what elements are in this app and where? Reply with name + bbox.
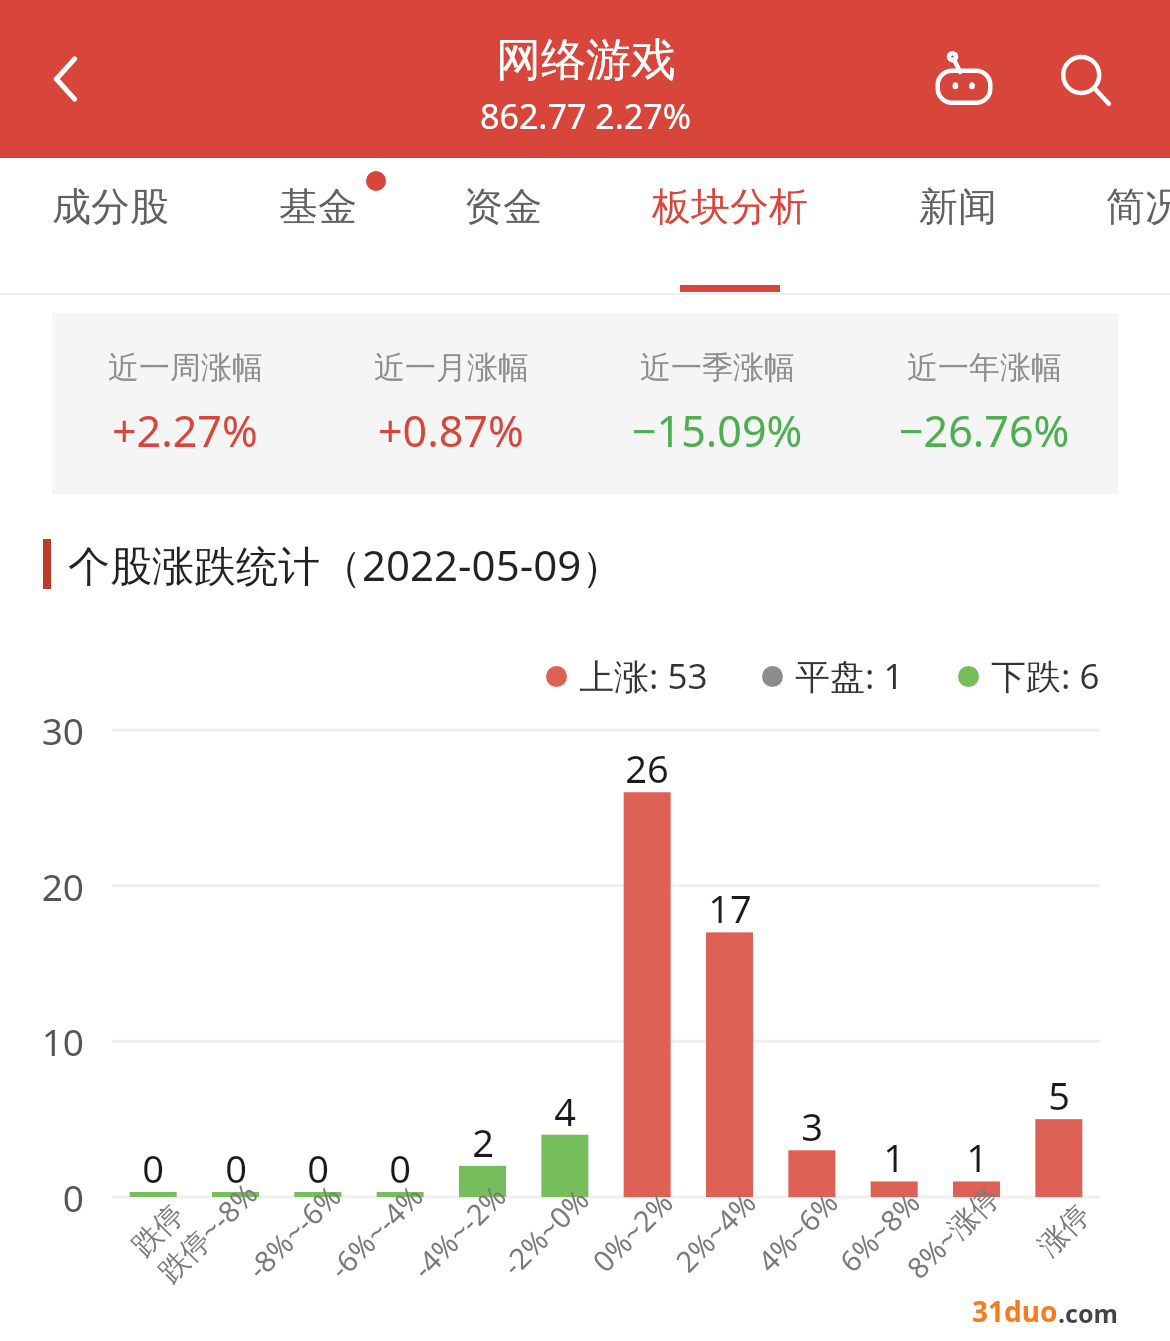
staticText: 近一季涨幅 (640, 348, 795, 387)
button[interactable]: Search (1040, 35, 1132, 127)
staticText: -6%~-4% (320, 1176, 431, 1287)
staticText: 2 (433, 1116, 533, 1168)
staticText: 下跌: 6 (991, 652, 1100, 700)
staticText: -4%~-2% (403, 1176, 514, 1287)
staticText: 0 (268, 1142, 368, 1194)
staticText: 成分股 (52, 182, 169, 231)
staticText: 近一周涨幅 (108, 348, 263, 387)
button[interactable]: Assistant robot (918, 35, 1010, 127)
button[interactable]: 近一周涨幅 (52, 313, 1118, 494)
staticText: 3 (762, 1100, 862, 1152)
button[interactable]: 成分股 (15, 158, 205, 295)
button[interactable]: 基金 (238, 158, 398, 295)
staticText: 基金 (279, 182, 357, 231)
staticText: 4%~6% (749, 1183, 845, 1280)
staticText: 资金 (464, 182, 542, 231)
staticText: 10 (12, 1016, 84, 1066)
button[interactable]: 平盘: 1 (762, 652, 904, 700)
staticText: 5 (1009, 1069, 1109, 1121)
staticText: 0 (12, 1172, 84, 1222)
staticText: 20 (12, 861, 84, 911)
staticText: 0 (103, 1142, 203, 1194)
staticText: 涨停 (1030, 1197, 1098, 1264)
staticText: 26 (597, 742, 697, 794)
staticText: 新闻 (919, 182, 997, 231)
staticText: 17 (680, 882, 780, 934)
staticText: -8%~-6% (238, 1176, 349, 1287)
staticText: 1 (844, 1131, 944, 1183)
staticText: 平盘: 1 (795, 652, 904, 700)
button[interactable]: 下跌: 6 (958, 652, 1100, 700)
button[interactable]: 简况 (1065, 158, 1170, 295)
staticText: 板块分析 (652, 182, 808, 231)
staticText: 跌停~-8% (149, 1174, 266, 1290)
staticText: 4 (515, 1085, 615, 1137)
staticText: −26.76% (899, 401, 1070, 460)
button[interactable]: 板块分析 (615, 158, 845, 295)
staticText: 2%~4% (667, 1183, 763, 1280)
staticText: 网络游戏 (496, 32, 676, 89)
staticText: 862.77 2.27% (480, 93, 691, 139)
button[interactable]: 上涨: 53 (546, 652, 708, 700)
staticText: 近一月涨幅 (374, 348, 529, 387)
staticText: 30 (12, 705, 84, 755)
staticText: +0.87% (378, 401, 524, 460)
button[interactable]: 新闻 (878, 158, 1038, 295)
staticText: 个股涨跌统计（2022-05-09） (68, 536, 624, 593)
staticText: 6%~8% (831, 1183, 927, 1280)
staticText: +2.27% (112, 401, 258, 460)
staticText: 0 (350, 1142, 450, 1194)
staticText: -2%~0% (493, 1179, 597, 1283)
staticText: .com (1058, 1296, 1118, 1330)
staticText: −15.09% (632, 401, 803, 460)
staticText: 近一年涨幅 (907, 348, 1062, 387)
staticText: 上涨: 53 (579, 652, 708, 700)
staticText: 跌停 (124, 1197, 192, 1264)
staticText: 0%~2% (584, 1183, 680, 1280)
staticText: 1 (927, 1131, 1027, 1183)
staticText: 简况 (1106, 182, 1170, 231)
staticText: 0 (186, 1142, 286, 1194)
button[interactable]: Back (28, 41, 104, 117)
button[interactable]: 资金 (423, 158, 583, 295)
staticText: 31duo (972, 1292, 1058, 1330)
staticText: 8%~涨停 (898, 1177, 1008, 1287)
